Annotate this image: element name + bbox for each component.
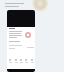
button[interactable]: Tab 1 <box>14 59 18 63</box>
button[interactable]: Tab 2 <box>19 59 23 63</box>
button[interactable]: Tab 0 <box>8 59 12 63</box>
button[interactable]: Tab 4 <box>30 59 34 63</box>
button[interactable]: Tab 3 <box>24 59 28 63</box>
